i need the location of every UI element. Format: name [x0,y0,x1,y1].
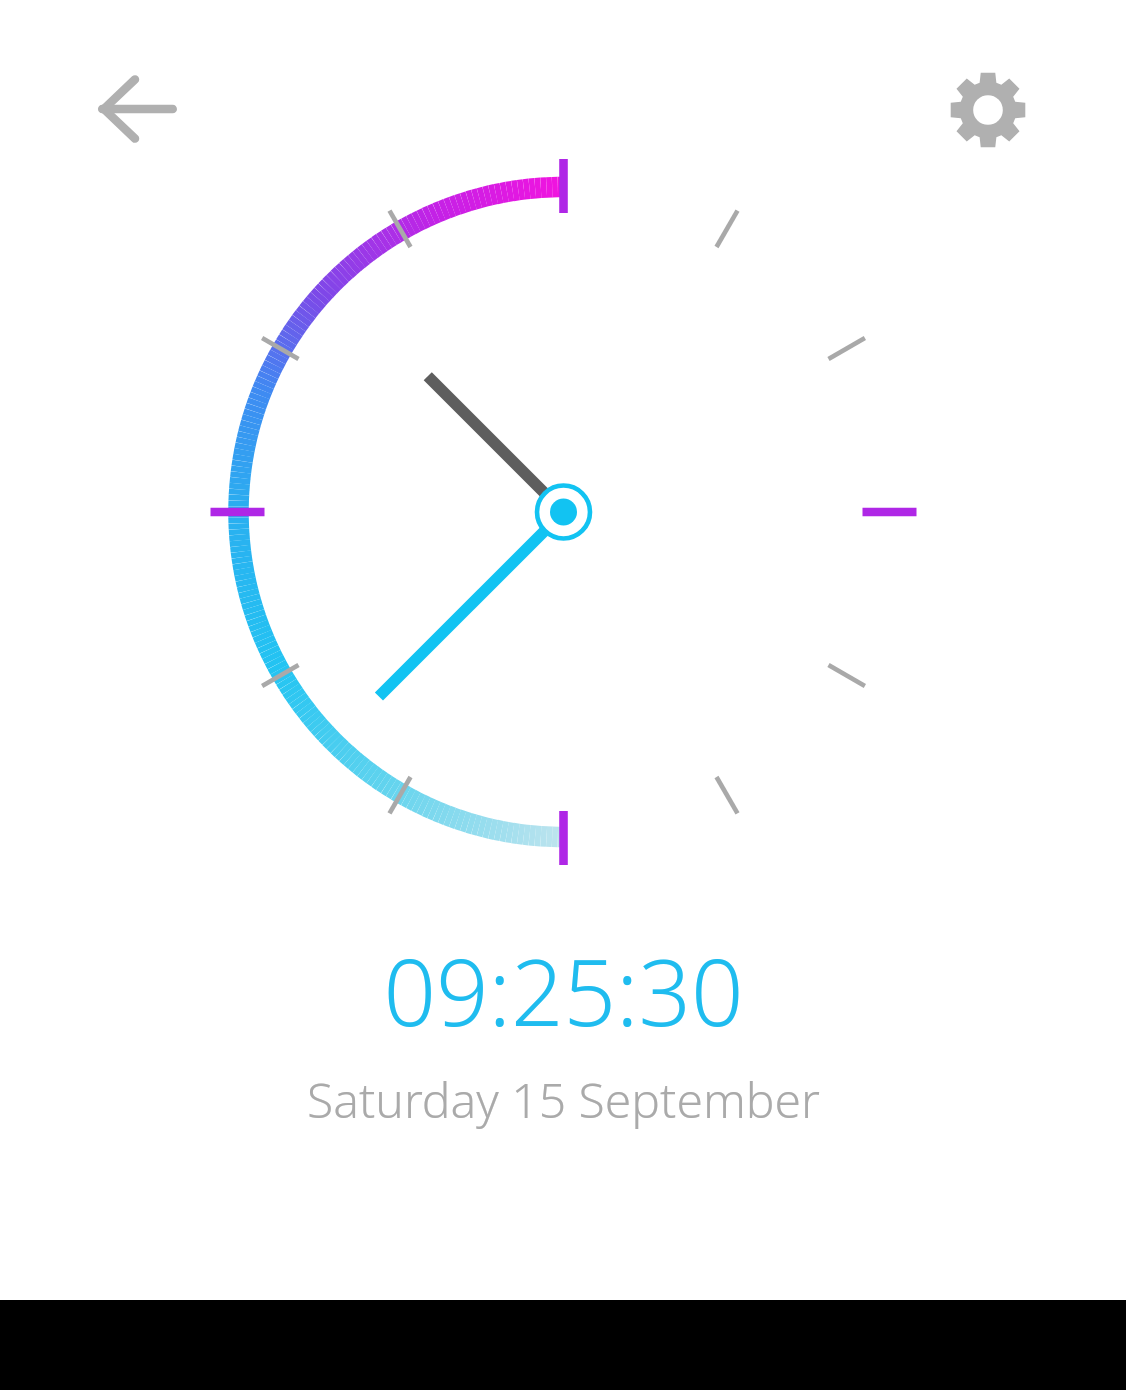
button[interactable]: Settings [950,72,1026,148]
button[interactable]: Back [94,72,176,146]
staticText: 09:25:30 [383,928,744,1053]
staticText: Saturday 15 September [307,1067,820,1132]
